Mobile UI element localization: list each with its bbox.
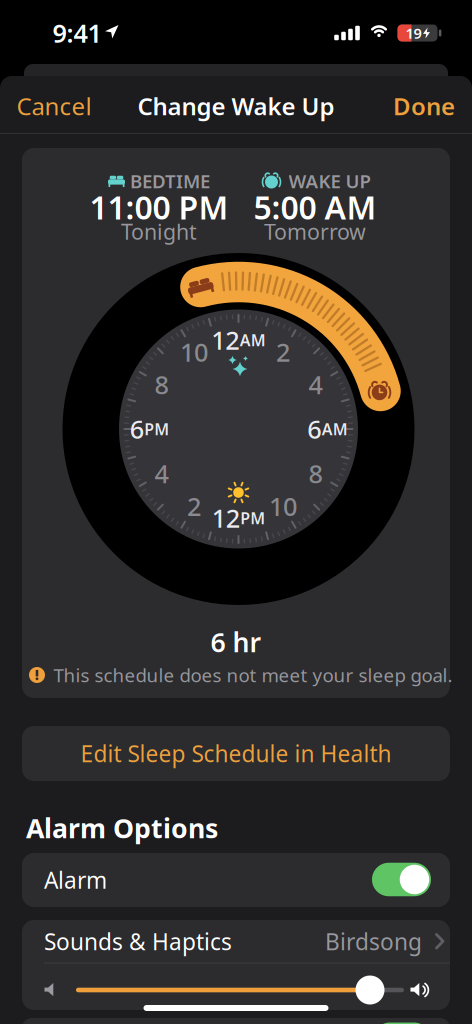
staticText: Sounds & Haptics [44,926,232,956]
staticText: Birdsong [325,926,422,956]
button[interactable]: Done [393,90,455,122]
staticText: Cancel [16,90,91,122]
staticText: Tomorrow [264,217,366,246]
staticText: 10 [180,335,208,369]
staticText: 11:00 PM [89,186,228,228]
staticText: 9:41 [52,16,101,50]
staticText: Done [393,90,455,122]
staticText: 4 [154,457,168,490]
staticText: 5:00 AM [253,186,376,228]
button[interactable]: Edit Sleep Schedule in Health [22,726,450,781]
staticText: PM [144,418,169,440]
button[interactable]: Cancel [16,90,91,122]
staticText: WAKE UP [288,169,370,193]
staticText: PM [240,507,265,529]
staticText: 2 [276,335,290,369]
staticText: BEDTIME [130,169,210,193]
staticText: 19 [405,23,421,43]
staticText: Change Wake Up [137,90,334,122]
button[interactable]: Alarm [22,853,450,907]
staticText: 6 [307,412,321,446]
staticText: Alarm [44,865,107,895]
button[interactable]: Sounds & Haptics [22,920,450,963]
staticText: 8 [154,368,168,401]
staticText: AM [322,418,348,440]
staticText: 6 hr [210,624,261,660]
staticText: Edit Sleep Schedule in Health [80,738,391,768]
staticText: 10 [269,489,297,523]
staticText: 4 [309,368,323,401]
staticText: 12 [212,501,240,535]
staticText: 8 [309,457,323,490]
staticText: This schedule does not meet your sleep g… [53,663,452,687]
staticText: AM [240,329,266,351]
staticText: Tonight [121,217,197,246]
staticText: 12 [211,323,239,357]
staticText: 6 [130,412,144,446]
staticText: 2 [187,489,201,523]
staticText: Alarm Options [26,810,218,846]
